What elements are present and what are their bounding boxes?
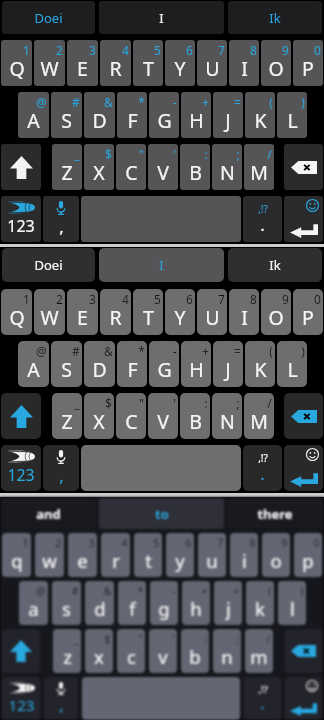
button[interactable]: 7 bbox=[198, 533, 226, 577]
button[interactable]: 4 bbox=[101, 533, 130, 577]
button[interactable]: - bbox=[149, 341, 179, 387]
button[interactable]: 6 bbox=[165, 289, 195, 335]
button[interactable]: & bbox=[85, 581, 114, 625]
button[interactable]: & bbox=[84, 341, 115, 387]
button[interactable]: Backspace bbox=[284, 144, 323, 190]
button[interactable]: " bbox=[117, 629, 145, 673]
button[interactable]: Space bbox=[82, 677, 240, 720]
button[interactable]: Symbols and numbers bbox=[1, 445, 41, 491]
button[interactable]: ' bbox=[149, 629, 177, 673]
button[interactable]: * bbox=[117, 92, 147, 138]
button[interactable]: - bbox=[149, 92, 179, 138]
button[interactable]: 6 bbox=[166, 533, 194, 577]
button[interactable]: 3 bbox=[67, 289, 98, 335]
button[interactable]: 4 bbox=[100, 40, 131, 86]
button[interactable]: Ik bbox=[228, 248, 322, 282]
button[interactable]: / bbox=[244, 144, 274, 190]
button[interactable]: Shift bbox=[1, 144, 41, 190]
button[interactable]: Shift bbox=[1, 393, 41, 439]
button[interactable]: 2 bbox=[35, 533, 64, 577]
button[interactable]: 4 bbox=[100, 289, 131, 335]
button[interactable]: 9 bbox=[261, 289, 291, 335]
button[interactable]: 2 bbox=[34, 40, 65, 86]
button[interactable]: : bbox=[180, 393, 210, 439]
button[interactable]: 8 bbox=[229, 289, 259, 335]
button[interactable]: Space bbox=[81, 445, 241, 491]
button[interactable]: 3 bbox=[67, 40, 98, 86]
button[interactable]: " bbox=[116, 393, 146, 439]
button[interactable]: _ bbox=[52, 144, 82, 190]
button[interactable]: 8 bbox=[230, 533, 258, 577]
button[interactable]: ) bbox=[277, 92, 307, 138]
button[interactable]: Enter bbox=[284, 445, 323, 491]
button[interactable]: Period and punctuation bbox=[243, 445, 282, 491]
button[interactable]: " bbox=[116, 144, 146, 190]
button[interactable]: ; bbox=[212, 144, 242, 190]
button[interactable]: 3 bbox=[68, 533, 97, 577]
button[interactable]: * bbox=[117, 341, 147, 387]
button[interactable]: + bbox=[181, 92, 211, 138]
button[interactable]: / bbox=[245, 629, 273, 673]
button[interactable]: ) bbox=[278, 581, 306, 625]
button[interactable]: Enter bbox=[285, 677, 322, 720]
button[interactable]: Symbols and numbers bbox=[1, 196, 41, 242]
button[interactable]: 7 bbox=[197, 289, 227, 335]
button[interactable]: to bbox=[99, 498, 224, 529]
button[interactable]: + bbox=[182, 581, 210, 625]
button[interactable]: 5 bbox=[133, 40, 163, 86]
button[interactable]: _ bbox=[53, 629, 81, 673]
button[interactable]: & bbox=[84, 92, 115, 138]
button[interactable]: 7 bbox=[197, 40, 227, 86]
button[interactable]: * bbox=[118, 581, 146, 625]
button[interactable]: Comma and voice input bbox=[43, 445, 79, 491]
button[interactable]: ( bbox=[245, 92, 275, 138]
button[interactable]: Period and punctuation bbox=[244, 677, 281, 720]
button[interactable]: I bbox=[99, 248, 224, 282]
button[interactable]: 0 bbox=[293, 289, 323, 335]
button[interactable]: # bbox=[51, 341, 82, 387]
button[interactable]: ) bbox=[277, 341, 307, 387]
button[interactable]: 0 bbox=[294, 533, 322, 577]
button[interactable]: = bbox=[213, 92, 243, 138]
button[interactable]: Doei bbox=[2, 248, 95, 282]
button[interactable]: Backspace bbox=[284, 393, 323, 439]
button[interactable]: / bbox=[244, 393, 274, 439]
button[interactable]: : bbox=[180, 144, 210, 190]
button[interactable]: 5 bbox=[133, 289, 163, 335]
button[interactable]: # bbox=[52, 581, 81, 625]
button[interactable]: 6 bbox=[165, 40, 195, 86]
button[interactable]: 0 bbox=[293, 40, 323, 86]
button[interactable]: = bbox=[214, 581, 242, 625]
button[interactable]: : bbox=[181, 629, 209, 673]
button[interactable]: ; bbox=[213, 629, 241, 673]
button[interactable]: ; bbox=[212, 393, 242, 439]
button[interactable]: Backspace bbox=[285, 629, 322, 673]
button[interactable]: + bbox=[181, 341, 211, 387]
button[interactable]: there bbox=[228, 498, 322, 529]
button[interactable]: Comma and voice input bbox=[44, 677, 78, 720]
button[interactable]: ( bbox=[246, 581, 274, 625]
button[interactable]: ( bbox=[245, 341, 275, 387]
button[interactable]: $ bbox=[84, 144, 114, 190]
button[interactable]: $ bbox=[84, 393, 114, 439]
button[interactable]: Doei bbox=[2, 1, 95, 34]
button[interactable]: @ bbox=[19, 581, 48, 625]
button[interactable]: 1 bbox=[1, 289, 32, 335]
button[interactable]: 9 bbox=[262, 533, 290, 577]
button[interactable]: @ bbox=[18, 341, 49, 387]
button[interactable]: 5 bbox=[134, 533, 162, 577]
button[interactable]: # bbox=[51, 92, 82, 138]
button[interactable]: 9 bbox=[261, 40, 291, 86]
button[interactable]: - bbox=[150, 581, 178, 625]
button[interactable]: = bbox=[213, 341, 243, 387]
button[interactable]: Comma and voice input bbox=[43, 196, 79, 242]
button[interactable]: Shift bbox=[2, 629, 40, 673]
button[interactable]: 2 bbox=[34, 289, 65, 335]
button[interactable]: Symbols and numbers bbox=[2, 677, 40, 720]
button[interactable]: _ bbox=[52, 393, 82, 439]
button[interactable]: ' bbox=[148, 144, 178, 190]
button[interactable]: Period and punctuation bbox=[243, 196, 282, 242]
button[interactable]: @ bbox=[18, 92, 49, 138]
button[interactable]: ' bbox=[148, 393, 178, 439]
